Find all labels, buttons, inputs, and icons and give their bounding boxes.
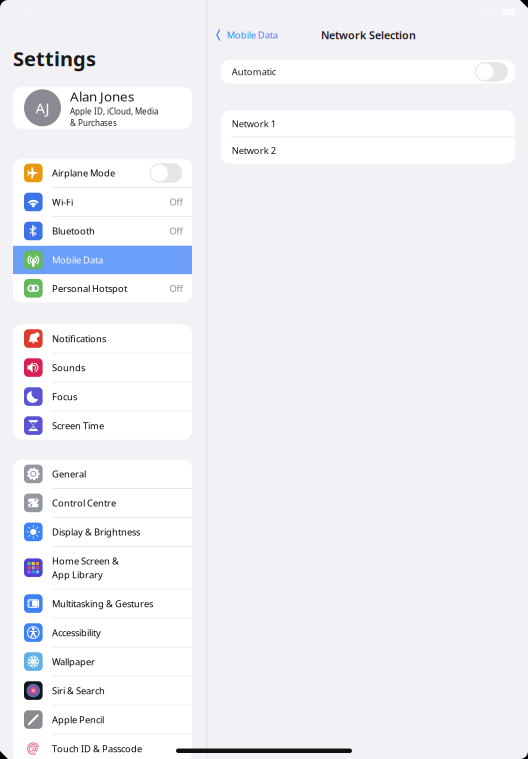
staticText: Network 2 bbox=[232, 144, 276, 157]
staticText: Airplane Mode bbox=[52, 167, 115, 179]
staticText: Multitasking & Gestures bbox=[52, 597, 153, 610]
button[interactable]: Network 1 bbox=[221, 110, 515, 137]
staticText: Siri & Search bbox=[52, 684, 105, 697]
button[interactable]: General bbox=[13, 460, 192, 488]
staticText: Alan Jones bbox=[70, 87, 134, 105]
staticText: Mobile Data bbox=[52, 254, 103, 266]
staticText: AJ bbox=[35, 98, 49, 118]
button[interactable]: Wallpaper bbox=[13, 647, 192, 676]
staticText: Focus bbox=[52, 390, 77, 403]
button[interactable]: Mobile Data bbox=[207, 24, 286, 46]
staticText: General bbox=[52, 468, 86, 480]
button[interactable]: Control Centre bbox=[13, 489, 192, 517]
staticText: Network Selection bbox=[321, 28, 416, 42]
staticText: Off bbox=[169, 196, 182, 208]
button[interactable]: Sounds bbox=[13, 353, 192, 382]
button[interactable]: Accessibility bbox=[13, 618, 192, 647]
staticText: Screen Time bbox=[52, 419, 104, 432]
staticText: Wi-Fi bbox=[52, 196, 73, 208]
staticText: Personal Hotspot bbox=[52, 282, 127, 294]
staticText: App Library bbox=[52, 568, 103, 581]
button[interactable]: Mobile Data bbox=[13, 246, 192, 274]
button[interactable]: Bluetooth bbox=[13, 217, 192, 245]
button[interactable]: Focus bbox=[13, 382, 192, 411]
staticText: Apple Pencil bbox=[52, 713, 104, 726]
button[interactable]: Personal Hotspot bbox=[13, 274, 192, 302]
button[interactable]: Wi-Fi bbox=[13, 188, 192, 216]
button[interactable]: Notifications bbox=[13, 324, 192, 353]
staticText: Touch ID & Passcode bbox=[52, 742, 142, 755]
button[interactable]: Siri & Search bbox=[13, 676, 192, 705]
button[interactable]: Touch ID & Passcode bbox=[13, 734, 192, 759]
staticText: & Purchases bbox=[70, 118, 117, 128]
staticText: Automatic bbox=[232, 66, 276, 78]
button[interactable]: Airplane Mode bbox=[13, 159, 192, 187]
staticText: Bluetooth bbox=[52, 225, 95, 237]
button[interactable]: Screen Time bbox=[13, 411, 192, 440]
staticText: Mobile Data bbox=[227, 29, 278, 41]
button[interactable]: Apple Pencil bbox=[13, 705, 192, 734]
staticText: Accessibility bbox=[52, 626, 101, 639]
button[interactable]: Display & Brightness bbox=[13, 518, 192, 546]
staticText: Settings bbox=[13, 45, 96, 72]
staticText: Control Centre bbox=[52, 497, 116, 509]
staticText: Apple ID, iCloud, Media bbox=[70, 106, 158, 117]
staticText: Network 1 bbox=[232, 117, 276, 130]
button[interactable]: Multitasking & Gestures bbox=[13, 589, 192, 618]
staticText: Notifications bbox=[52, 332, 106, 345]
staticText: Off bbox=[169, 225, 182, 237]
button[interactable]: AJ bbox=[13, 87, 192, 129]
button[interactable]: Network 2 bbox=[221, 137, 515, 164]
staticText: Off bbox=[169, 282, 182, 294]
staticText: Sounds bbox=[52, 361, 85, 374]
staticText: Home Screen & bbox=[52, 555, 119, 567]
staticText: Display & Brightness bbox=[52, 526, 140, 538]
staticText: Wallpaper bbox=[52, 655, 95, 668]
button[interactable]: Home Screen & bbox=[13, 547, 192, 589]
